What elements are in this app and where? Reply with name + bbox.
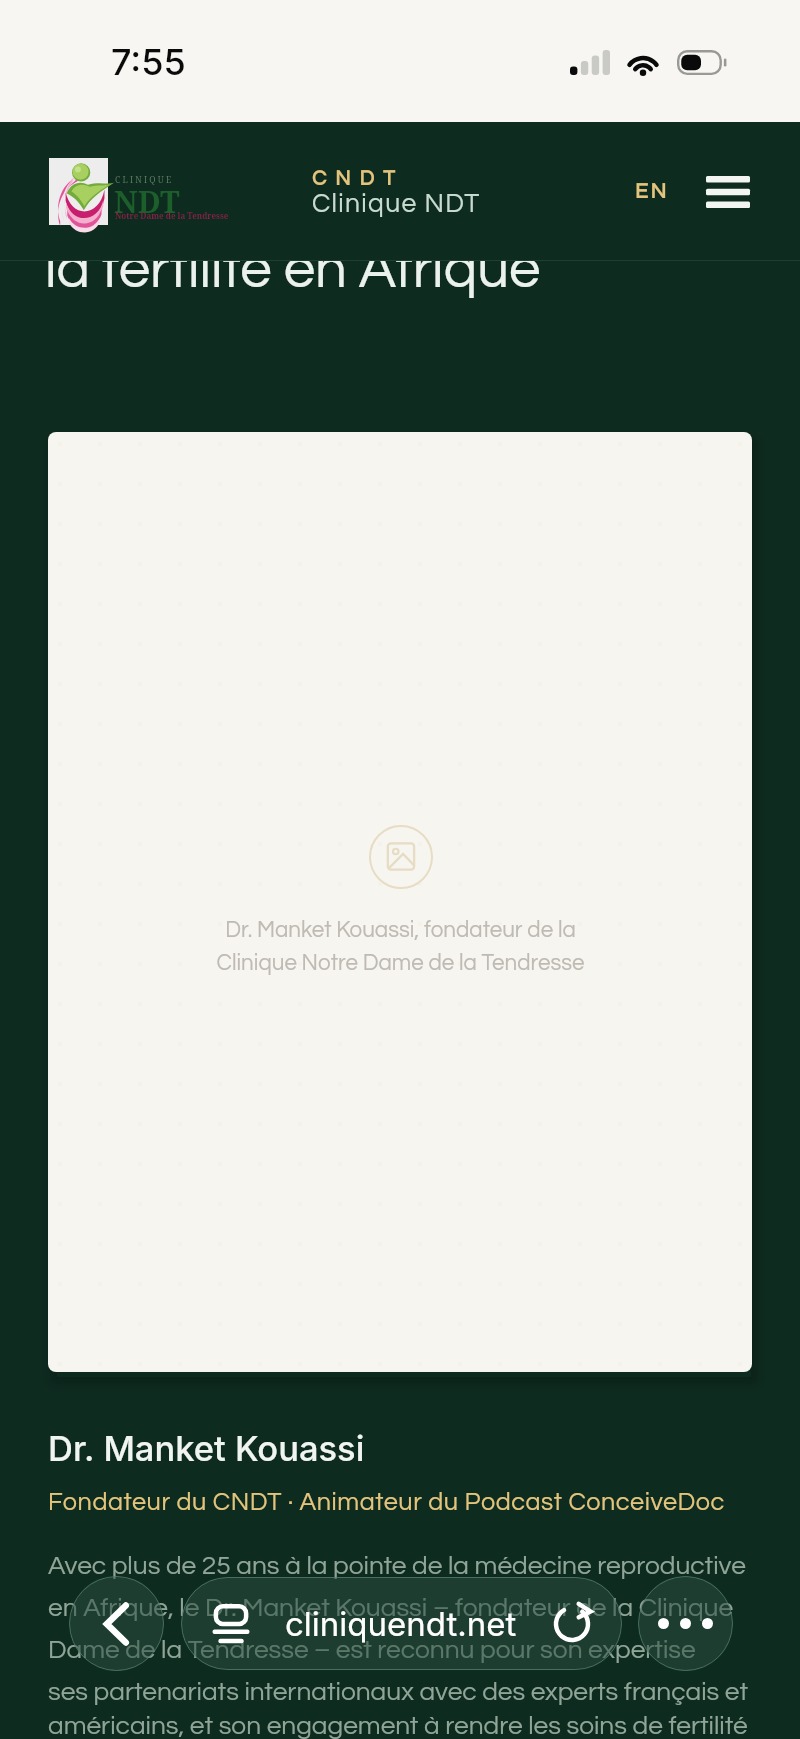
staticText: Dame de la Tendresse – est reconnu pour … [48,1636,752,1663]
staticText: Avec plus de 25 ans à la pointe de la mé… [48,1552,746,1579]
staticText: en Afrique, le Dr. Manket Kouassi – fond… [48,1594,752,1621]
button[interactable]: cliniquendt.net [181,1577,622,1670]
staticText: Fondateur du CNDT · Animateur du Podcast… [48,1489,725,1515]
button[interactable]: Clinique NDT logo [49,157,278,227]
button[interactable]: More options [638,1576,733,1671]
staticText: la fertilité en Afrique [45,241,541,299]
button[interactable]: Dr. Manket Kouassi, fondateur de la [48,432,752,1372]
staticText: CLINIQUE [115,174,174,186]
staticText: Dr. Manket Kouassi [48,1428,365,1470]
staticText: américains, et son engagement à rendre l… [48,1712,748,1739]
staticText: Clinique NDT [312,190,481,217]
staticText: C N D T [312,168,398,189]
staticText: EN [635,181,669,203]
button[interactable]: Back [69,1576,164,1671]
staticText: Clinique Notre Dame de la Tendresse [216,952,585,975]
staticText: 7:55 [111,40,186,84]
staticText: Notre Dame de la Tendresse [115,210,229,221]
staticText: ses partenariats internationaux avec des… [48,1678,749,1705]
staticText: Dr. Manket Kouassi, fondateur de la [225,919,576,942]
staticText: cliniquendt.net [285,1604,517,1644]
staticText: NDT [114,181,180,222]
button[interactable]: Menu [694,166,762,218]
button[interactable]: EN [622,170,682,214]
button[interactable]: Reload [551,1603,593,1645]
